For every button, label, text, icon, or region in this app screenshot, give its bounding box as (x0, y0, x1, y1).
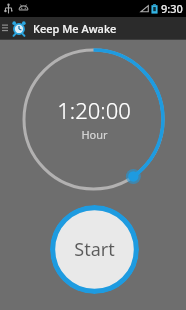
button[interactable]: Start (50, 205, 139, 294)
staticText: Start (74, 237, 115, 262)
staticText: Hour (81, 127, 108, 142)
staticText: Keep Me Awake (33, 21, 117, 36)
staticText: 1:20:00 (57, 95, 131, 125)
button[interactable]: Navigation drawer (0, 17, 9, 39)
staticText: 9:30 (161, 1, 183, 16)
button[interactable]: Set duration (20, 46, 167, 193)
